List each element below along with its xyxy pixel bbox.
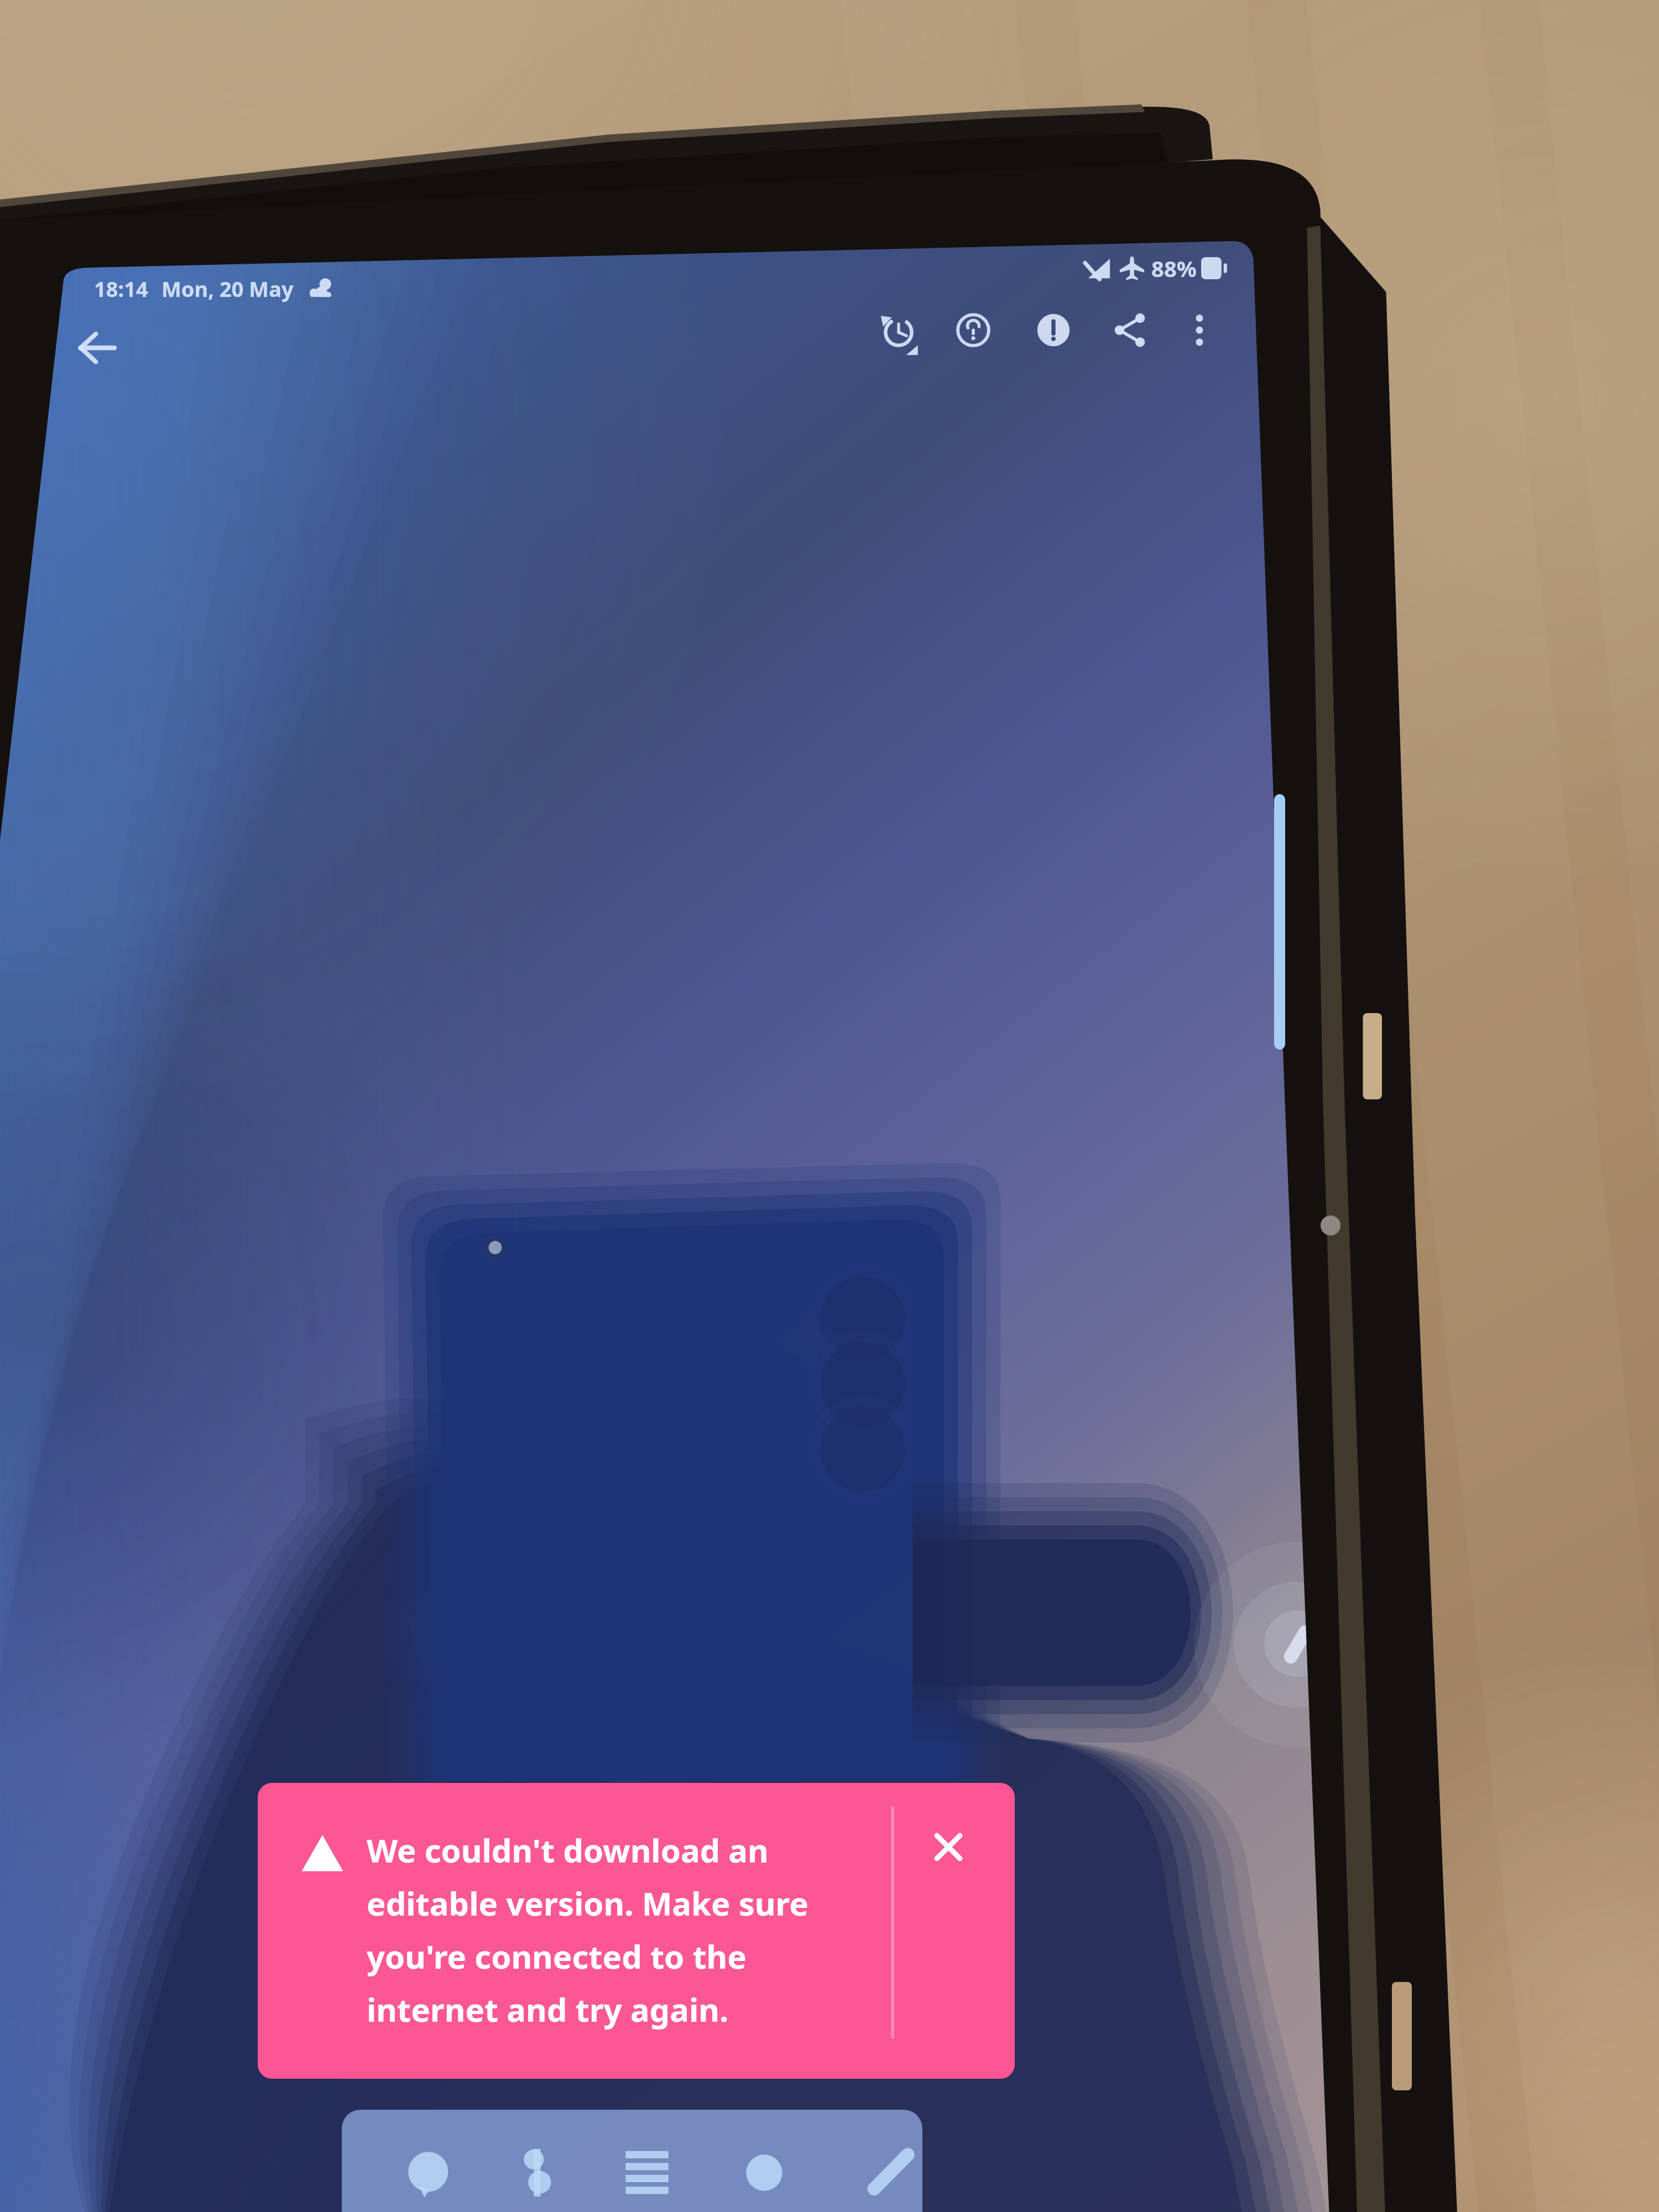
staticText: Mon, 20 May xyxy=(161,274,294,303)
button[interactable]: Dismiss xyxy=(911,1810,985,1884)
staticText: 88% xyxy=(1151,253,1197,283)
button[interactable]: More options xyxy=(1163,294,1236,367)
staticText: We couldn't download an editable version… xyxy=(367,1828,826,2031)
button[interactable]: Document information xyxy=(1017,294,1090,367)
button[interactable]: Back xyxy=(59,311,133,385)
button[interactable]: Edit xyxy=(841,2124,922,2212)
button[interactable]: Help xyxy=(937,294,1010,367)
button[interactable]: Insert xyxy=(716,2124,813,2212)
button[interactable]: We couldn't download an editable version… xyxy=(258,1783,1015,2079)
button[interactable]: Paragraph xyxy=(598,2124,696,2212)
button[interactable]: Comment xyxy=(380,2124,478,2212)
button[interactable]: Version history xyxy=(862,296,935,369)
button[interactable]: Share xyxy=(1093,294,1166,367)
button[interactable]: Text formatting xyxy=(490,2124,587,2212)
staticText: 18:14 xyxy=(94,274,148,303)
